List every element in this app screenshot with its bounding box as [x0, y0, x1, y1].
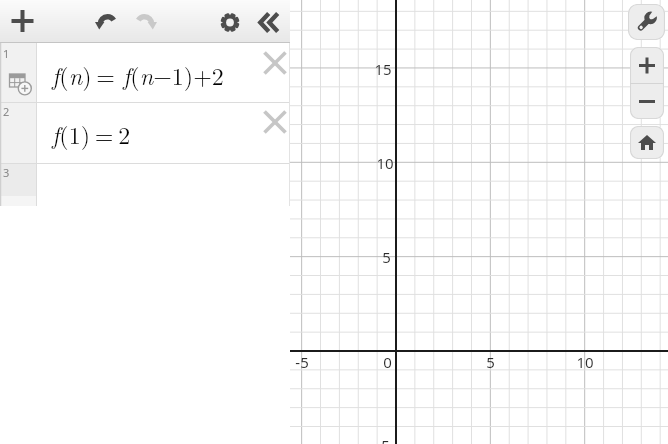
- button[interactable]: [213, 4, 247, 39]
- button[interactable]: f(1) = 2: [36, 103, 290, 164]
- staticText: 5: [382, 247, 391, 267]
- staticText: 2: [3, 104, 10, 119]
- staticText: -5: [295, 352, 309, 372]
- button[interactable]: [251, 4, 285, 39]
- button[interactable]: [6, 4, 40, 39]
- staticText: -5: [376, 435, 390, 444]
- button[interactable]: [628, 4, 665, 40]
- staticText: 5: [486, 352, 495, 372]
- staticText: 0: [383, 352, 392, 372]
- button[interactable]: [129, 4, 161, 39]
- staticText: 10: [576, 352, 594, 372]
- staticText: f(n) = f(n−1)+2: [52, 58, 224, 92]
- staticText: 1: [3, 46, 10, 61]
- staticText: 15: [374, 59, 392, 79]
- button[interactable]: [630, 47, 664, 83]
- button[interactable]: [630, 126, 664, 159]
- staticText: 3: [3, 165, 10, 180]
- button[interactable]: [630, 83, 664, 119]
- staticText: f(1) = 2: [52, 117, 131, 151]
- staticText: 10: [376, 153, 394, 173]
- button[interactable]: [262, 50, 288, 76]
- button[interactable]: [92, 4, 124, 39]
- button[interactable]: [262, 109, 288, 135]
- button[interactable]: f(n) = f(n−1)+2: [36, 43, 290, 103]
